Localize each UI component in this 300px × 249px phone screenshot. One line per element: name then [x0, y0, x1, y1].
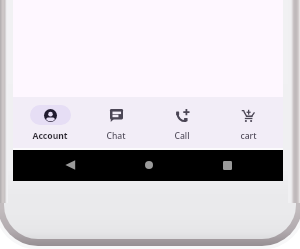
button[interactable]: Account — [17, 97, 83, 142]
button[interactable]: cart — [215, 97, 281, 142]
button[interactable]: Back — [64, 158, 78, 172]
staticText: cart — [240, 130, 257, 142]
staticText: Account — [32, 130, 68, 142]
button[interactable]: Call — [149, 97, 215, 142]
button[interactable]: Chat — [83, 97, 149, 142]
button[interactable]: Recents — [220, 158, 234, 172]
staticText: Call — [174, 130, 190, 142]
staticText: Chat — [106, 130, 126, 142]
button[interactable]: Home — [142, 158, 156, 172]
